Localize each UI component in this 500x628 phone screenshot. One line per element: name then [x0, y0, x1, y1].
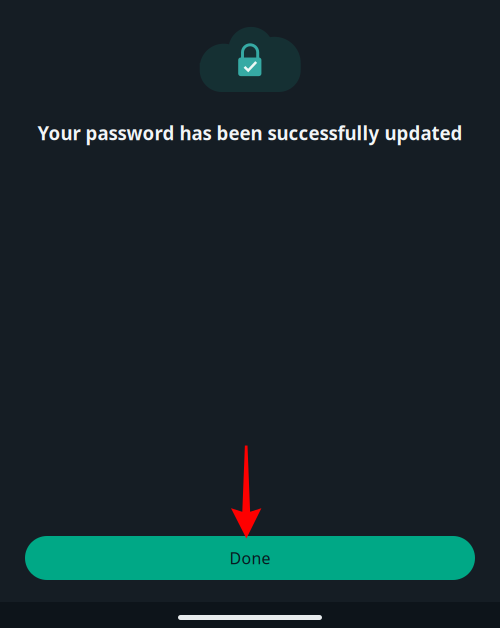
staticText: Done: [229, 547, 270, 569]
staticText: Your password has been successfully upda…: [37, 121, 462, 145]
button[interactable]: Done: [25, 536, 475, 580]
